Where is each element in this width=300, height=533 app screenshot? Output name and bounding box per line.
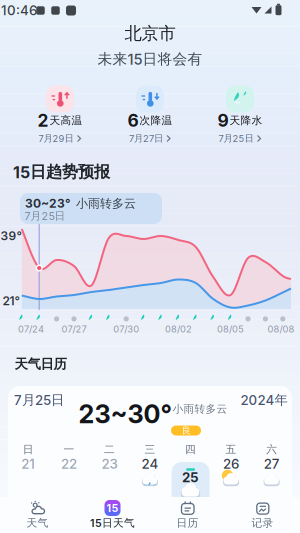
staticText: 23 (101, 456, 117, 472)
button[interactable]: 9 (196, 80, 284, 152)
staticText: 26 (223, 456, 239, 472)
button[interactable]: 7月27日 (253, 455, 291, 519)
staticText: 24 (141, 456, 158, 472)
staticText: 日 (23, 443, 34, 456)
staticText: 39° (0, 229, 21, 243)
staticText: 10:46 (1, 3, 37, 18)
staticText: 15日趋势预报 (13, 162, 110, 182)
staticText: 天气 (26, 516, 48, 529)
staticText: 6 (127, 110, 138, 131)
button[interactable]: 记录 (225, 497, 300, 533)
staticText: 30~23° (25, 196, 71, 211)
staticText: 25 (182, 470, 199, 485)
staticText: 2 (37, 110, 48, 131)
staticText: 小雨转多云 (76, 196, 136, 211)
staticText: 良 (181, 425, 190, 436)
staticText: 二 (104, 443, 115, 456)
button[interactable]: 7月22日 (50, 455, 88, 519)
staticText: 9 (217, 110, 228, 131)
staticText: 记录 (251, 516, 273, 529)
staticText: 08/05 (217, 323, 244, 334)
button[interactable]: 2 (16, 80, 104, 152)
staticText: 27 (264, 456, 280, 472)
staticText: 7月25日 (218, 133, 253, 144)
staticText: 7月27日 (129, 133, 163, 144)
staticText: 7月25日 (14, 392, 64, 408)
staticText: 2024年 (240, 392, 287, 408)
staticText: 四 (185, 443, 196, 456)
button[interactable]: 7月25日 (172, 455, 210, 519)
staticText: 08/08 (267, 323, 294, 334)
staticText: 天气日历 (14, 356, 66, 372)
button[interactable]: 7月21日 (9, 455, 47, 519)
staticText: 21° (2, 294, 19, 308)
staticText: 21 (21, 456, 35, 472)
staticText: 15 (106, 502, 118, 514)
staticText: 小雨转多云 (172, 402, 227, 415)
staticText: 23~30° (78, 399, 171, 429)
button[interactable]: 7月23日 (90, 455, 128, 519)
staticText: 天高温 (49, 114, 82, 127)
staticText: 7月29日 (38, 133, 73, 144)
staticText: 五 (226, 443, 237, 456)
button[interactable]: 7月24日 (131, 455, 169, 519)
button[interactable]: 日历 (150, 497, 225, 533)
staticText: 07/24 (18, 323, 44, 334)
staticText: 北京市 (124, 23, 175, 44)
button[interactable]: 天气 (0, 497, 75, 533)
staticText: 22 (61, 456, 77, 472)
staticText: 三 (144, 443, 155, 456)
staticText: 日历 (176, 516, 198, 529)
staticText: 08/02 (165, 323, 192, 334)
staticText: 次降温 (139, 114, 172, 127)
staticText: 07/27 (61, 323, 86, 334)
button[interactable]: 6 (106, 80, 194, 152)
button[interactable]: 7月26日 (212, 455, 250, 519)
staticText: 天降水 (229, 114, 262, 127)
staticText: 一 (63, 443, 74, 456)
button[interactable]: 15 (75, 497, 150, 533)
staticText: 未来15日将会有 (97, 50, 202, 68)
staticText: 15日天气 (90, 516, 135, 529)
staticText: 7月25日 (24, 209, 65, 222)
staticText: 六 (266, 443, 277, 456)
staticText: 07/30 (113, 323, 139, 334)
